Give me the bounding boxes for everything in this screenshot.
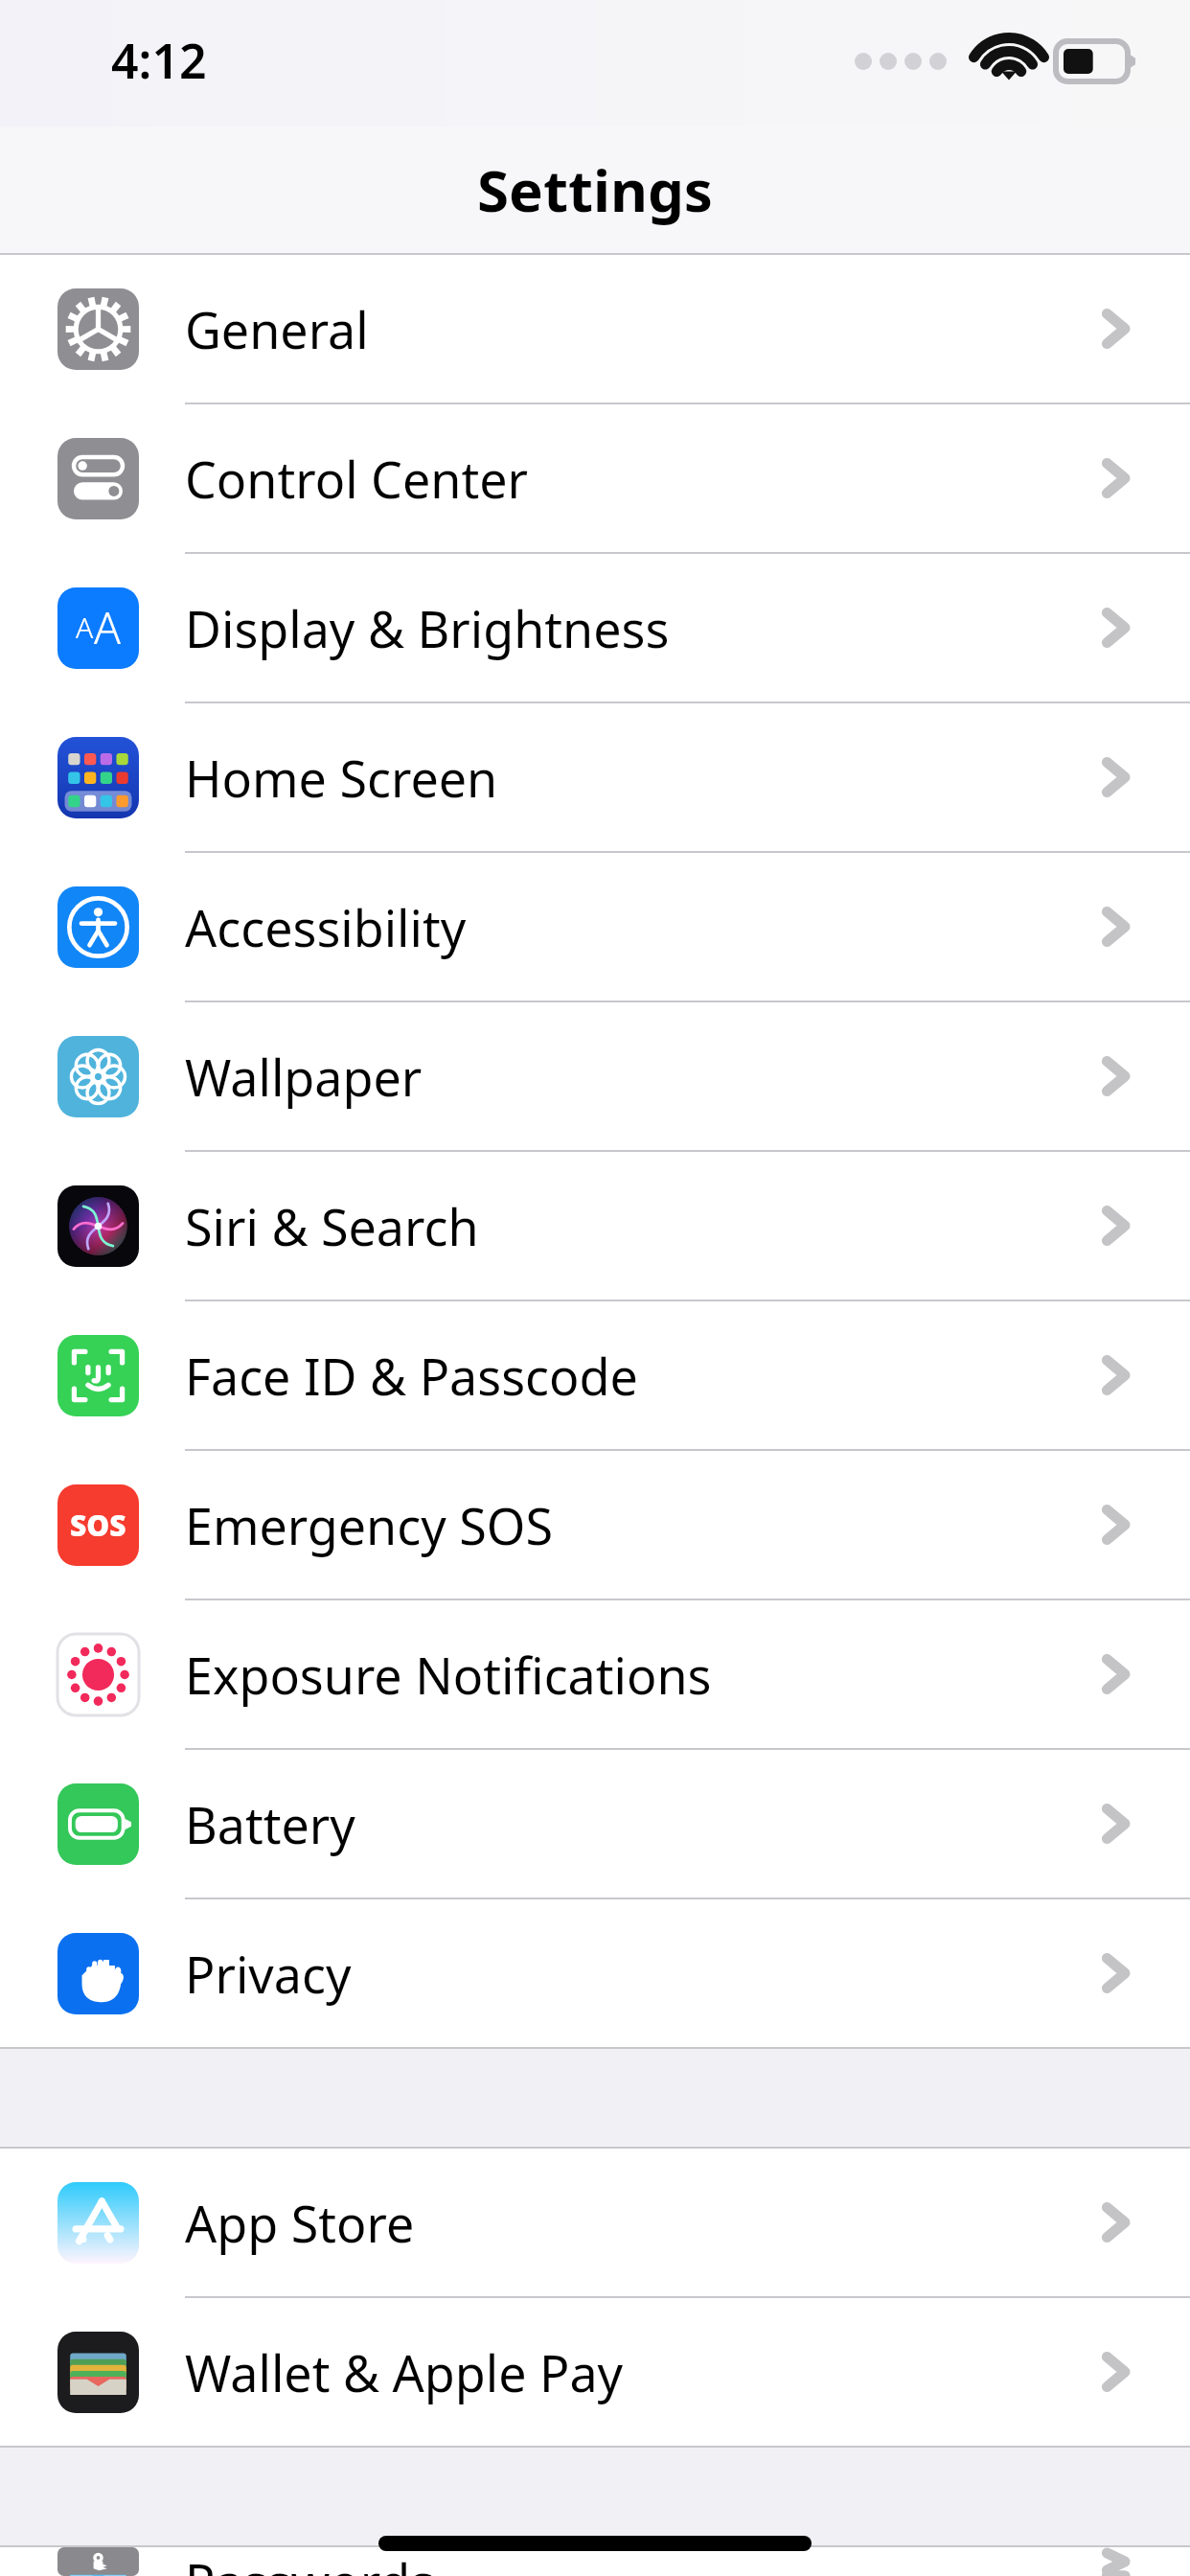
button[interactable]: Accessibility [0, 853, 1190, 1000]
staticText: App Store [185, 2189, 415, 2257]
staticText: Emergency SOS [185, 1491, 553, 1559]
button[interactable]: Wallet & Apple Pay [0, 2298, 1190, 2446]
staticText: Exposure Notifications [185, 1641, 712, 1709]
button[interactable]: App Store [0, 2149, 1190, 2296]
staticText: A [76, 608, 94, 647]
staticText: General [185, 295, 369, 363]
button[interactable]: Wallpaper [0, 1002, 1190, 1150]
staticText: Wallpaper [185, 1043, 423, 1111]
staticText: Wallet & Apple Pay [185, 2338, 624, 2406]
button[interactable]: General [0, 255, 1190, 402]
button[interactable]: SOS [0, 1451, 1190, 1598]
staticText: Home Screen [185, 744, 498, 812]
staticText: Display & Brightness [185, 594, 670, 662]
button[interactable]: Privacy [0, 1899, 1190, 2047]
staticText: Privacy [185, 1940, 352, 2008]
button[interactable]: Exposure Notifications [0, 1600, 1190, 1748]
button[interactable]: Passwords [0, 2547, 1190, 2576]
button[interactable]: A [0, 554, 1190, 701]
button[interactable]: Face ID & Passcode [0, 1301, 1190, 1449]
staticText: Settings [477, 150, 713, 229]
staticText: 4:12 [111, 28, 207, 93]
staticText: Face ID & Passcode [185, 1342, 638, 1410]
button[interactable]: Battery [0, 1750, 1190, 1897]
button[interactable]: Home Screen [0, 703, 1190, 851]
staticText: Battery [185, 1790, 355, 1858]
staticText: Siri & Search [185, 1192, 479, 1260]
button[interactable]: Control Center [0, 404, 1190, 552]
staticText: Accessibility [185, 893, 467, 961]
staticText: SOS [70, 1506, 126, 1545]
staticText: A [94, 597, 121, 657]
staticText: Passwords [185, 2547, 435, 2576]
button[interactable]: Siri & Search [0, 1152, 1190, 1299]
staticText: Control Center [185, 445, 528, 513]
